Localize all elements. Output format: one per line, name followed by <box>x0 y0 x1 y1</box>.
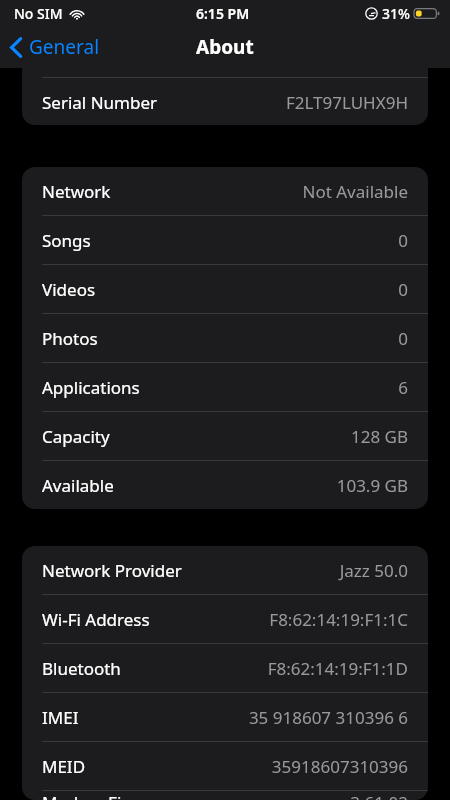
staticText: IMEI <box>42 706 79 729</box>
button[interactable]: Videos <box>22 264 428 313</box>
staticText: Songs <box>42 229 91 252</box>
button[interactable]: Wi-Fi Address <box>22 594 428 643</box>
button[interactable]: General <box>0 30 110 64</box>
staticText: Capacity <box>42 425 110 448</box>
staticText: Available <box>42 474 114 497</box>
staticText: 35 918607 310396 6 <box>248 706 408 729</box>
staticText: Not Available <box>302 180 408 203</box>
staticText: 6:15 PM <box>196 4 250 23</box>
button[interactable]: Photos <box>22 313 428 362</box>
button[interactable]: Network Provider <box>22 546 428 594</box>
staticText: Photos <box>42 327 98 350</box>
staticText: 128 GB <box>350 425 408 448</box>
staticText: No SIM <box>14 4 63 23</box>
staticText: 0 <box>398 327 408 350</box>
staticText: Bluetooth <box>42 657 121 680</box>
staticText: Modem Firmware <box>42 791 184 800</box>
staticText: General <box>29 34 100 60</box>
button[interactable]: Applications <box>22 362 428 411</box>
staticText: 31% <box>382 4 410 23</box>
staticText: Wi-Fi Address <box>42 608 150 631</box>
staticText: 35918607310396 <box>271 755 408 778</box>
staticText: About <box>196 34 254 60</box>
button[interactable]: Bluetooth <box>22 643 428 692</box>
staticText: MEID <box>42 755 86 778</box>
staticText: F8:62:14:19:F1:1D <box>267 657 408 680</box>
button[interactable]: MEID <box>22 741 428 790</box>
staticText: 0 <box>398 229 408 252</box>
button[interactable]: Songs <box>22 215 428 264</box>
staticText: F8:62:14:19:F1:1C <box>269 608 408 631</box>
button[interactable]: Serial Number <box>22 77 428 125</box>
staticText: Network <box>42 180 111 203</box>
staticText: 3.61.02 <box>350 791 408 800</box>
staticText: 0 <box>398 278 408 301</box>
button[interactable]: Available <box>22 460 428 509</box>
button[interactable]: IMEI <box>22 692 428 741</box>
button[interactable]: Capacity <box>22 411 428 460</box>
staticText: Videos <box>42 278 96 301</box>
staticText: Applications <box>42 376 140 399</box>
staticText: Network Provider <box>42 559 182 582</box>
staticText: Jazz 50.0 <box>339 559 408 582</box>
staticText: F2LT97LUHX9H <box>285 91 408 114</box>
button[interactable]: Modem Firmware <box>22 790 428 800</box>
staticText: Serial Number <box>42 91 158 114</box>
staticText: 6 <box>398 376 408 399</box>
button[interactable]: Network <box>22 167 428 215</box>
staticText: 103.9 GB <box>336 474 408 497</box>
